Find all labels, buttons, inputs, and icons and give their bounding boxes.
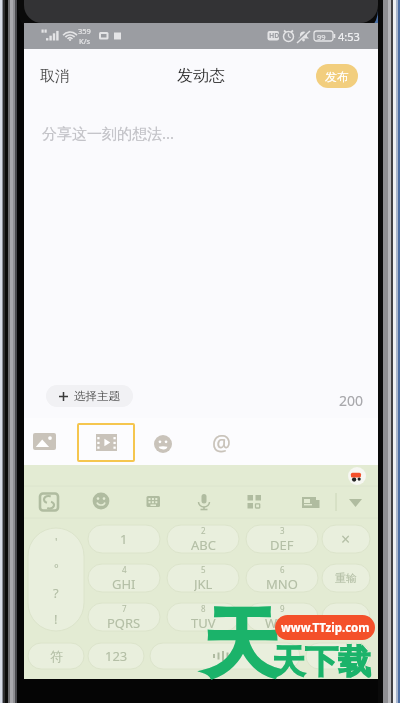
- staticText: 符: [50, 648, 63, 664]
- staticText: www.TTzip.com: [281, 620, 370, 636]
- button[interactable]: 5: [167, 564, 239, 592]
- staticText: HD: [269, 31, 280, 41]
- button[interactable]: 选择主题: [46, 385, 133, 407]
- staticText: ': [55, 534, 58, 549]
- staticText: JKL: [194, 575, 213, 592]
- staticText: GHI: [112, 575, 136, 592]
- staticText: 1: [120, 530, 128, 548]
- staticText: DEF: [270, 536, 294, 553]
- button[interactable]: 9: [246, 603, 318, 631]
- button[interactable]: Add image: [26, 424, 62, 458]
- staticText: PQRS: [107, 614, 141, 631]
- staticText: 选择主题: [74, 389, 120, 403]
- button[interactable]: Promotion: [348, 467, 366, 485]
- button[interactable]: ': [28, 528, 84, 554]
- staticText: K/s: [79, 36, 91, 46]
- button[interactable]: 3: [246, 525, 318, 553]
- button[interactable]: 6: [246, 564, 318, 592]
- staticText: MNO: [266, 575, 298, 592]
- button[interactable]: 取消: [24, 57, 86, 96]
- staticText: WXYZ: [265, 614, 300, 631]
- staticText: ABC: [191, 536, 216, 553]
- button[interactable]: 4: [88, 564, 160, 592]
- staticText: @: [212, 429, 231, 458]
- button[interactable]: Emoji: [146, 427, 180, 461]
- button[interactable]: 1: [88, 525, 160, 553]
- staticText: 9: [280, 603, 285, 614]
- button[interactable]: !: [28, 606, 84, 631]
- button[interactable]: ×: [322, 525, 370, 553]
- staticText: 7: [122, 603, 127, 614]
- staticText: 2: [201, 525, 206, 536]
- button[interactable]: 符: [28, 643, 84, 669]
- staticText: 5: [201, 564, 206, 575]
- staticText: 分享这一刻的想法...: [42, 123, 175, 143]
- staticText: 天: [203, 597, 279, 693]
- staticText: 天下载: [272, 641, 371, 683]
- button[interactable]: 7: [88, 603, 160, 631]
- button[interactable]: Mention someone: [204, 426, 238, 460]
- staticText: 200: [339, 391, 364, 410]
- staticText: 359: [78, 26, 91, 36]
- button[interactable]: 发布: [316, 64, 358, 88]
- staticText: 123: [105, 647, 128, 665]
- staticText: 重输: [335, 571, 357, 585]
- button[interactable]: 8: [167, 603, 239, 631]
- staticText: 3: [280, 525, 285, 536]
- staticText: ?: [53, 584, 59, 602]
- button[interactable]: 重输: [322, 564, 370, 592]
- staticText: !: [54, 610, 58, 628]
- staticText: TUV: [191, 614, 216, 631]
- staticText: 4:53: [338, 29, 360, 44]
- button[interactable]: Add video: [77, 423, 135, 462]
- button[interactable]: 2: [167, 525, 239, 553]
- staticText: 4: [122, 564, 127, 575]
- button[interactable]: ?: [28, 580, 84, 606]
- staticText: ×: [341, 528, 351, 550]
- staticText: 发动态: [177, 66, 225, 86]
- staticText: 8: [201, 603, 206, 614]
- button[interactable]: 123: [88, 643, 144, 669]
- staticText: 6: [280, 564, 285, 575]
- staticText: 99: [317, 32, 326, 42]
- staticText: 发布: [325, 69, 349, 84]
- staticText: 取消: [40, 67, 70, 86]
- staticText: °: [54, 560, 59, 575]
- button[interactable]: °: [28, 554, 84, 580]
